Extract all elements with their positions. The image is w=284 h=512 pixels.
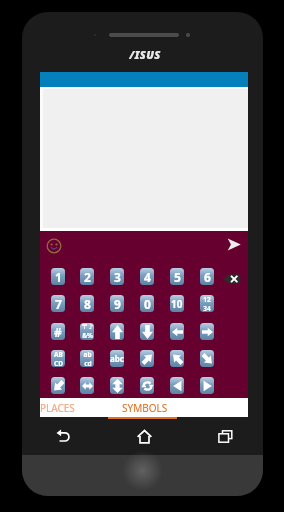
button[interactable]: 8 bbox=[80, 295, 94, 312]
staticText: 2 bbox=[84, 269, 91, 285]
button[interactable]: abc bbox=[110, 350, 124, 367]
staticText: AB bbox=[54, 350, 63, 359]
button[interactable]: abcd bbox=[80, 350, 94, 367]
button[interactable]: R bbox=[200, 323, 214, 340]
button[interactable]: U bbox=[110, 323, 124, 340]
button[interactable]: Emoji bbox=[46, 238, 62, 254]
button[interactable]: SYMBOLS bbox=[110, 398, 179, 417]
staticText: 10 bbox=[171, 297, 183, 311]
staticText: # bbox=[54, 324, 62, 340]
button[interactable]: TL bbox=[170, 377, 184, 394]
staticText: 0 bbox=[144, 296, 151, 312]
button[interactable]: CY bbox=[140, 377, 154, 394]
staticText: /ISUS bbox=[129, 47, 161, 59]
button[interactable]: 10 bbox=[170, 295, 184, 312]
button[interactable]: UD bbox=[110, 377, 124, 394]
button[interactable]: ABCD bbox=[51, 350, 65, 367]
staticText: 4 bbox=[144, 269, 151, 285]
button[interactable]: L bbox=[170, 323, 184, 340]
staticText: 34 bbox=[203, 304, 211, 312]
button[interactable]: DR bbox=[200, 350, 214, 367]
button[interactable]: Backspace bbox=[223, 273, 241, 285]
button[interactable]: Recents bbox=[218, 429, 233, 444]
staticText: 5 bbox=[174, 269, 181, 285]
staticText: 1 bbox=[55, 269, 62, 285]
staticText: abc bbox=[110, 353, 124, 364]
staticText: 8 bbox=[84, 296, 91, 312]
button[interactable]: 0 bbox=[140, 295, 154, 312]
button[interactable]: 7 bbox=[51, 295, 65, 312]
button[interactable]: UL bbox=[170, 350, 184, 367]
button[interactable]: DL bbox=[51, 377, 65, 394]
button[interactable]: 6 bbox=[200, 268, 214, 285]
button[interactable]: PLACES bbox=[23, 398, 92, 417]
staticText: 3 bbox=[114, 269, 121, 285]
button[interactable]: SYM bbox=[80, 323, 94, 340]
staticText: 〒♪ bbox=[82, 323, 93, 331]
button[interactable]: # bbox=[51, 323, 65, 340]
button[interactable]: 3 bbox=[110, 268, 124, 285]
button[interactable]: 2 bbox=[80, 268, 94, 285]
button[interactable]: 1 bbox=[51, 268, 65, 285]
staticText: cd bbox=[84, 359, 92, 367]
button[interactable]: Send bbox=[225, 236, 242, 253]
staticText: CD bbox=[54, 359, 63, 367]
button[interactable]: 9 bbox=[110, 295, 124, 312]
button[interactable]: UR bbox=[140, 350, 154, 367]
button[interactable]: D bbox=[140, 323, 154, 340]
staticText: 12 bbox=[203, 295, 211, 304]
staticText: ab bbox=[83, 350, 92, 359]
button[interactable]: 1234 bbox=[200, 295, 214, 312]
staticText: SYMBOLS bbox=[122, 401, 168, 415]
button[interactable]: Home bbox=[137, 429, 152, 444]
staticText: 9 bbox=[114, 296, 121, 312]
button[interactable]: Back bbox=[55, 429, 70, 444]
staticText: PLACES bbox=[40, 401, 75, 415]
staticText: &% bbox=[82, 331, 93, 340]
staticText: 7 bbox=[55, 296, 62, 312]
button[interactable]: 4 bbox=[140, 268, 154, 285]
button[interactable]: 5 bbox=[170, 268, 184, 285]
button[interactable]: LR bbox=[80, 377, 94, 394]
staticText: 6 bbox=[204, 269, 211, 285]
button[interactable]: TR bbox=[200, 377, 214, 394]
